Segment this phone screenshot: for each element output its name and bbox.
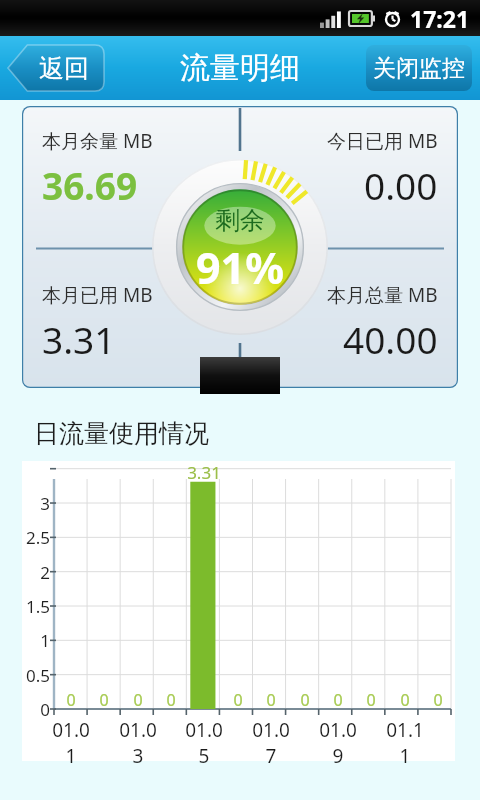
staticText: 01.01 [47,717,95,769]
staticText: 剩余 [215,205,265,236]
staticText: 01.07 [247,717,295,769]
staticText: 0 [330,689,346,711]
staticText: 返回 [39,53,89,84]
staticText: 0 [163,689,179,711]
staticText: 01.09 [314,717,362,769]
button[interactable]: 关闭监控 [366,45,472,91]
staticText: 91% [196,238,284,297]
staticText: 1.5 [22,595,50,618]
staticText: 日流量使用情况 [34,418,209,449]
staticText: 0 [263,689,279,711]
staticText: 36.69 [42,160,138,210]
staticText: 3 [22,492,50,515]
staticText: 本月已用 MB [42,282,153,308]
button[interactable]: 返回 [8,45,104,91]
staticText: 流量明细 [180,49,300,87]
staticText: 0 [397,689,413,711]
staticText: 01.05 [180,717,228,769]
staticText: 0 [63,689,79,711]
staticText: 01.03 [114,717,162,769]
staticText: 0 [297,689,313,711]
staticText: 0 [130,689,146,711]
staticText: 今日已用 MB [327,128,438,154]
staticText: 本月总量 MB [327,282,438,308]
staticText: 0 [96,689,112,711]
staticText: 0 [363,689,379,711]
staticText: 01.11 [381,717,429,769]
staticText: 0.00 [364,160,438,210]
staticText: 0 [22,698,50,721]
staticText: 本月余量 MB [42,128,153,154]
staticText: 17:21 [410,3,470,34]
staticText: 0 [230,689,246,711]
staticText: 关闭监控 [373,54,465,83]
button[interactable]: 3 [22,461,455,761]
staticText: 3.31 [42,314,116,364]
staticText: 2 [22,561,50,584]
staticText: 0 [430,689,446,711]
staticText: 40.00 [343,314,438,364]
staticText: 3.31 [186,461,222,484]
staticText: 2.5 [22,526,50,549]
staticText: 0.5 [22,664,50,687]
button[interactable]: 本月余量 MB [22,106,458,388]
staticText: 1 [22,629,50,652]
